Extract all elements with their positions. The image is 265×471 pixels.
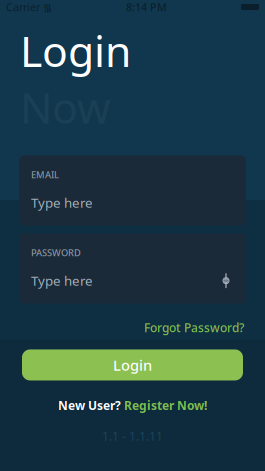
staticText: Forgot Password?: [144, 319, 244, 335]
staticText: Type here: [31, 272, 93, 289]
button[interactable]: Register Now!: [124, 397, 207, 413]
button[interactable]: Login: [22, 349, 243, 380]
staticText: ᯾: [40, 0, 52, 14]
staticText: 8:14 PM: [126, 0, 167, 14]
staticText: EMAIL: [31, 168, 59, 181]
staticText: Login: [20, 22, 131, 79]
staticText: 1.1 - 1.1.11: [102, 428, 163, 444]
staticText: New User?: [58, 397, 121, 413]
staticText: Now: [20, 79, 111, 135]
staticText: PASSWORD: [31, 246, 81, 259]
button[interactable]: Forgot Password?: [144, 319, 244, 335]
staticText: Carrier: [6, 0, 40, 14]
staticText: Login: [113, 355, 152, 375]
staticText: Type here: [31, 194, 93, 211]
staticText: Register Now!: [124, 397, 207, 413]
